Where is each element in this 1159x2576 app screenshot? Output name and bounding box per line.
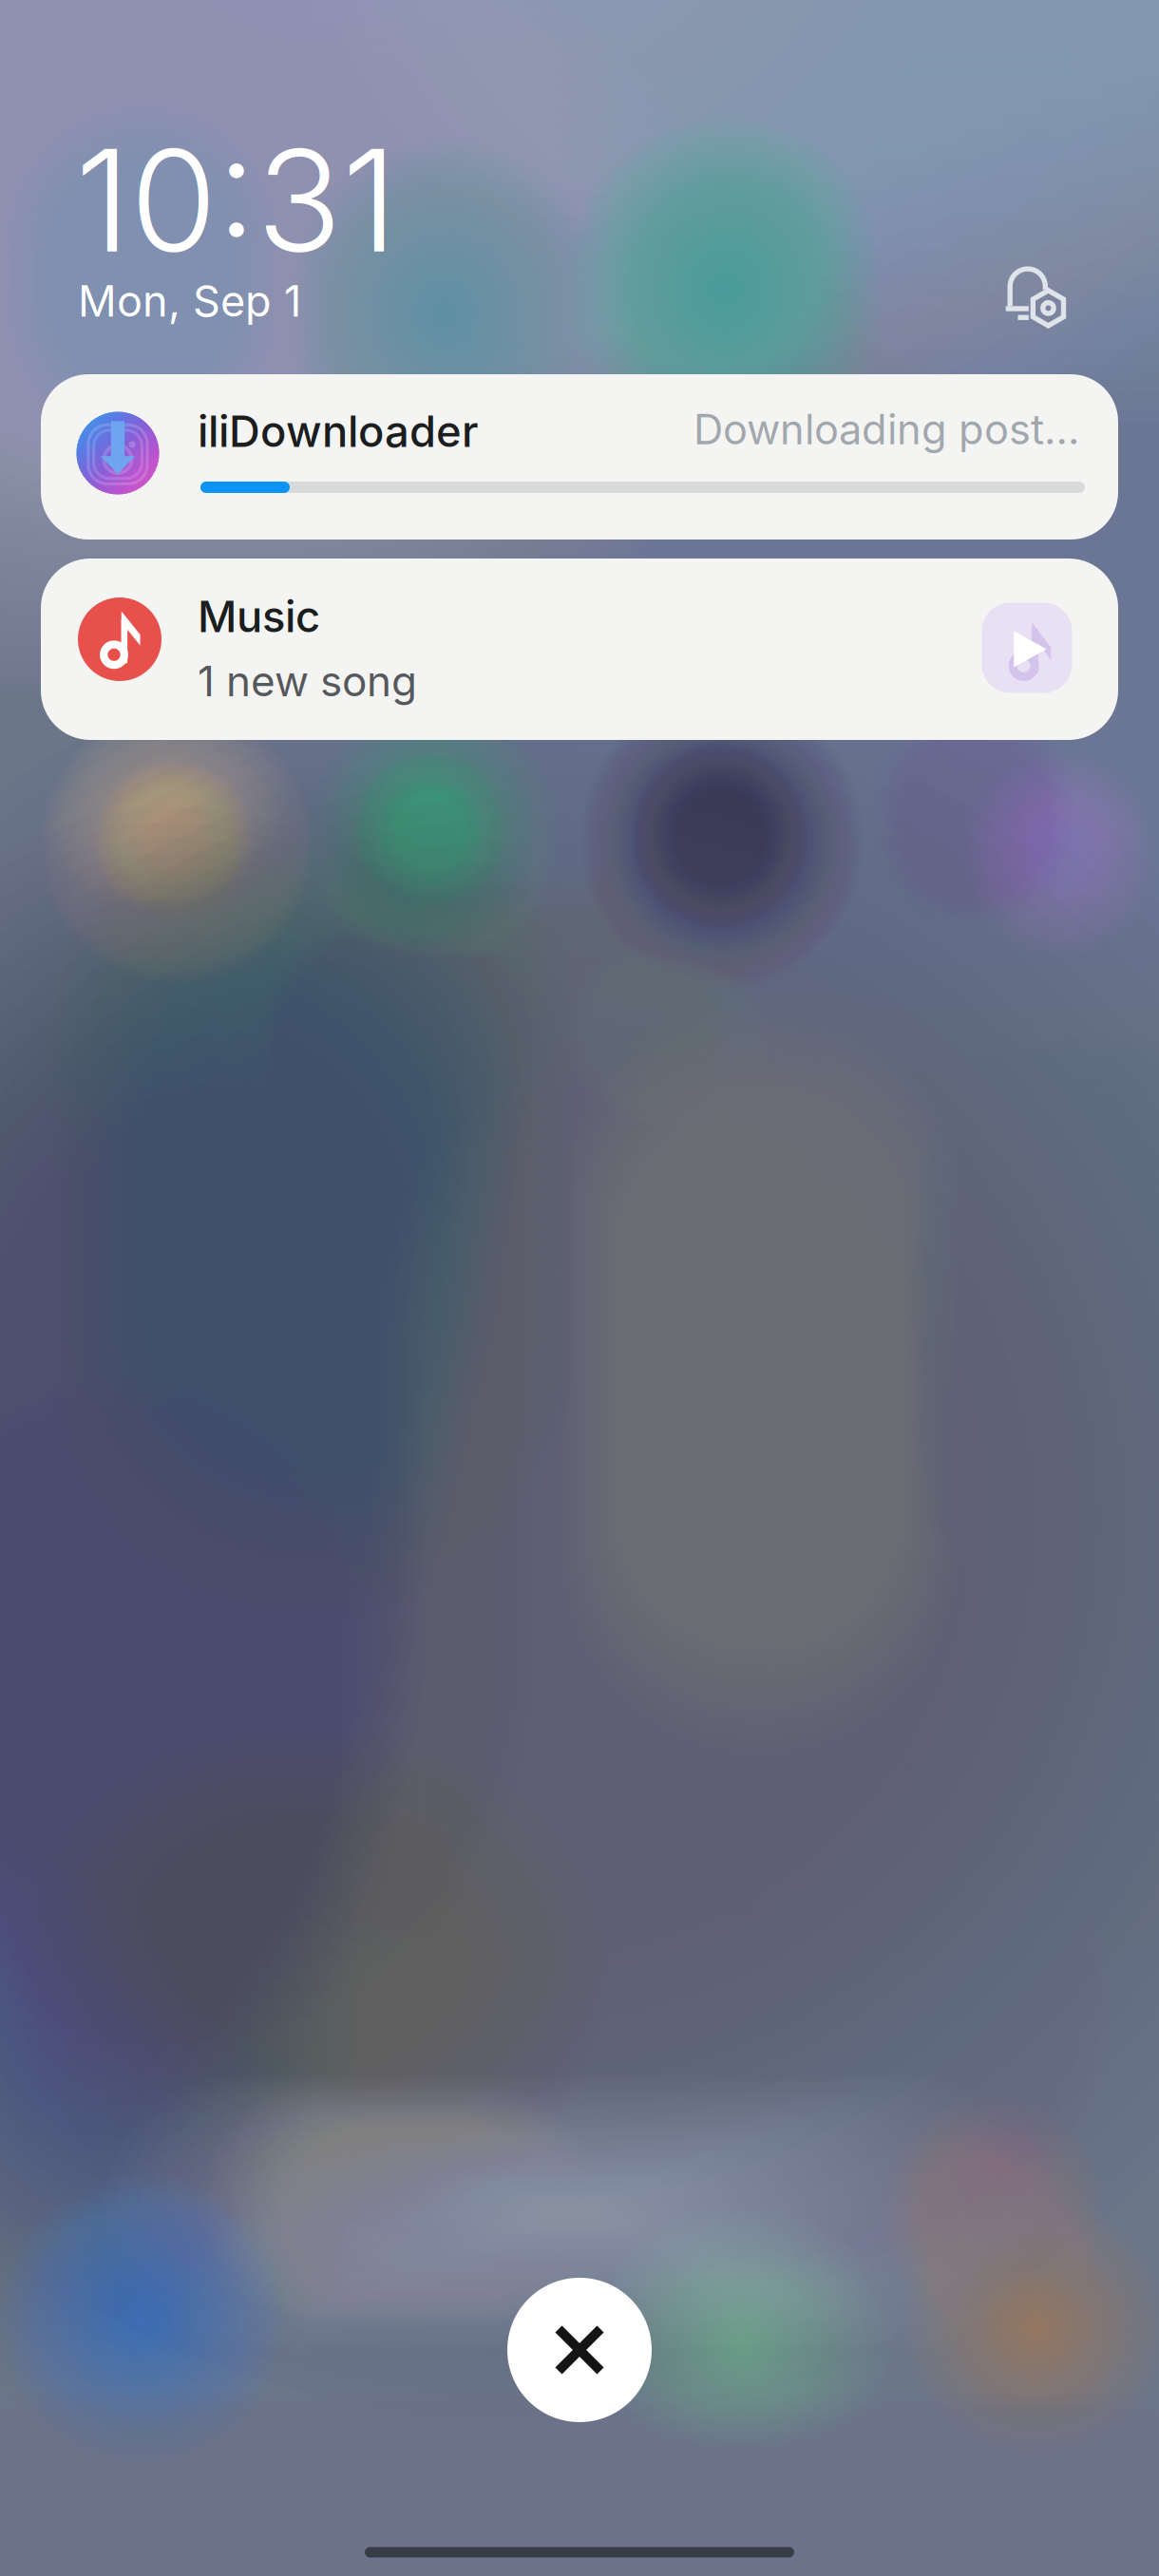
staticText: iliDownloader: [198, 405, 479, 457]
staticText: Music: [198, 590, 320, 642]
staticText: Downloading post…: [693, 404, 1079, 454]
button[interactable]: Music: [41, 559, 1118, 740]
staticText: 10:31: [75, 115, 397, 286]
button[interactable]: Close: [507, 2278, 652, 2422]
staticText: Mon, Sep 1: [78, 275, 301, 327]
button[interactable]: Notification settings: [978, 240, 1092, 354]
staticText: 1 new song: [198, 656, 417, 706]
button[interactable]: iliDownloader: [41, 374, 1118, 540]
